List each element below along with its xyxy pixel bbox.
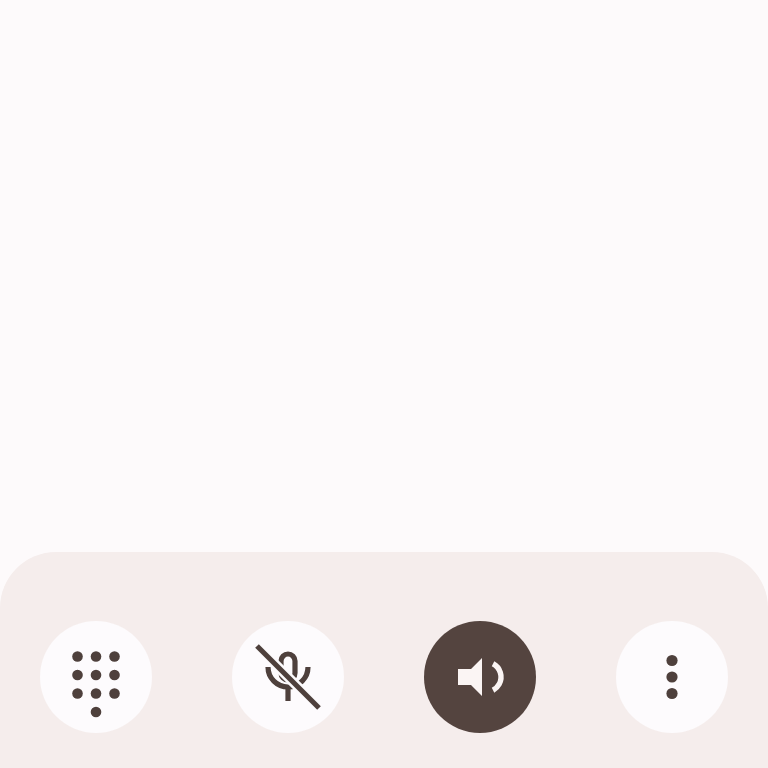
button[interactable]: Dialpad (40, 621, 152, 733)
button[interactable]: Mute (232, 621, 344, 733)
button[interactable]: Speaker (424, 621, 536, 733)
button[interactable]: More options (616, 621, 728, 733)
